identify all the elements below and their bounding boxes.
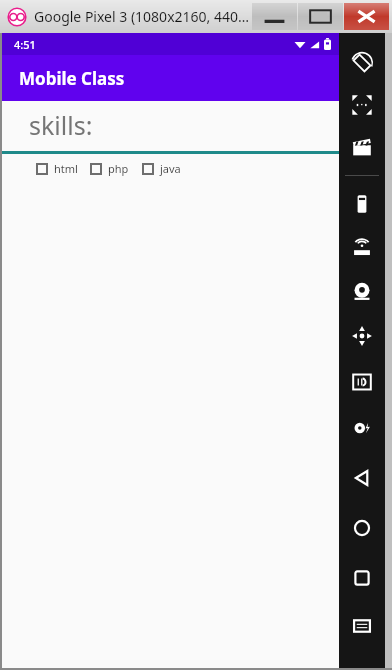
button[interactable]: Overview bbox=[346, 562, 378, 594]
button[interactable]: Back bbox=[346, 462, 378, 494]
staticText: 4:51 bbox=[14, 37, 36, 52]
button[interactable]: Record screen bbox=[346, 131, 378, 163]
staticText: java bbox=[160, 161, 181, 176]
button[interactable]: Rotate bbox=[346, 47, 378, 79]
button[interactable]: Mobile Class bbox=[2, 55, 339, 101]
staticText: Mobile Class bbox=[19, 67, 125, 90]
button[interactable]: Directional pad bbox=[346, 320, 378, 352]
button[interactable]: java bbox=[142, 161, 181, 176]
staticText: php bbox=[108, 161, 129, 176]
button[interactable]: Battery bbox=[346, 188, 378, 220]
button[interactable]: Camera bbox=[346, 276, 378, 308]
button[interactable]: GPS location bbox=[346, 232, 378, 264]
button[interactable]: Maximize bbox=[298, 3, 343, 30]
button[interactable]: html bbox=[36, 161, 78, 176]
staticText: skills: bbox=[29, 108, 93, 142]
button[interactable]: Home bbox=[346, 512, 378, 544]
button[interactable]: Snapshot bbox=[346, 412, 378, 444]
button[interactable]: skills: bbox=[2, 101, 339, 151]
button[interactable]: Device ID bbox=[346, 366, 378, 398]
button[interactable]: Minimize bbox=[252, 3, 297, 30]
button[interactable]: Menu bbox=[346, 610, 378, 642]
button[interactable]: Close bbox=[344, 3, 389, 30]
button[interactable]: php bbox=[90, 161, 129, 176]
staticText: html bbox=[54, 161, 78, 176]
button[interactable]: Zoom 1:1 bbox=[346, 89, 378, 121]
staticText: Google Pixel 3 (1080x2160, 440… bbox=[34, 7, 250, 26]
